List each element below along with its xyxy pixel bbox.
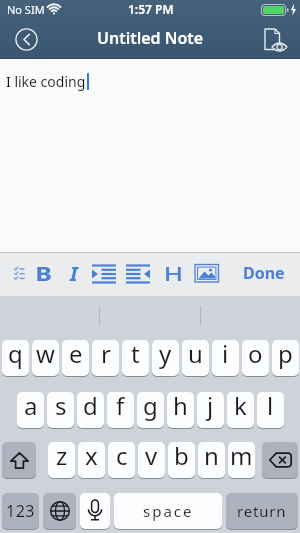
button[interactable]: d — [77, 392, 104, 428]
button[interactable]: h — [167, 392, 194, 428]
button[interactable]: v — [138, 442, 165, 478]
staticText: s — [55, 392, 67, 422]
button[interactable]: t — [122, 340, 149, 376]
staticText: e — [69, 340, 83, 370]
button[interactable] — [2, 442, 36, 478]
button[interactable]: p — [272, 340, 299, 376]
button[interactable] — [80, 493, 110, 529]
staticText: d — [83, 392, 98, 422]
button[interactable] — [262, 442, 298, 478]
staticText: i — [222, 340, 229, 370]
staticText: No SIM — [7, 2, 45, 17]
staticText: 1:57 PM — [128, 1, 174, 17]
staticText: I like coding — [6, 72, 86, 91]
button[interactable]: m — [228, 442, 255, 478]
button[interactable] — [124, 262, 152, 286]
staticText: Untitled Note — [97, 27, 204, 49]
button[interactable]: l — [257, 392, 284, 428]
staticText: v — [145, 442, 158, 472]
button[interactable]: g — [137, 392, 164, 428]
staticText: H — [164, 260, 183, 287]
staticText: y — [159, 340, 172, 370]
button[interactable]: x — [78, 442, 105, 478]
staticText: k — [234, 392, 247, 422]
staticText: o — [248, 340, 263, 370]
button[interactable]: r — [92, 340, 119, 376]
staticText: B — [35, 260, 53, 287]
staticText: n — [204, 442, 219, 472]
button[interactable]: space — [114, 493, 222, 529]
button[interactable] — [194, 263, 220, 284]
staticText: m — [230, 442, 253, 472]
staticText: c — [116, 442, 128, 472]
button[interactable]: c — [108, 442, 135, 478]
button[interactable] — [90, 262, 118, 286]
staticText: u — [188, 340, 203, 370]
staticText: g — [143, 392, 158, 422]
button[interactable]: q — [2, 340, 29, 376]
staticText: return — [237, 501, 287, 521]
staticText: f — [116, 392, 125, 422]
button[interactable]: I — [14, 259, 134, 287]
staticText: Done — [243, 262, 285, 284]
button[interactable]: f — [107, 392, 134, 428]
button[interactable]: e — [62, 340, 89, 376]
staticText: b — [174, 442, 189, 472]
button[interactable]: a — [17, 392, 44, 428]
button[interactable]: n — [198, 442, 225, 478]
button[interactable]: B — [0, 259, 104, 287]
staticText: x — [85, 442, 98, 472]
staticText: 123 — [6, 500, 35, 522]
staticText: q — [8, 340, 23, 370]
staticText: h — [173, 392, 188, 422]
button[interactable]: return — [226, 493, 298, 529]
button[interactable]: Done — [204, 259, 300, 287]
button[interactable]: u — [182, 340, 209, 376]
button[interactable]: o — [242, 340, 269, 376]
button[interactable]: k — [227, 392, 254, 428]
button[interactable] — [11, 264, 29, 284]
staticText: space — [143, 501, 194, 521]
staticText: j — [207, 392, 214, 422]
button[interactable] — [43, 493, 76, 529]
button[interactable]: j — [197, 392, 224, 428]
button[interactable]: w — [32, 340, 59, 376]
staticText: l — [267, 392, 274, 422]
staticText: z — [56, 442, 68, 472]
button[interactable]: i — [212, 340, 239, 376]
staticText: I — [70, 260, 78, 287]
button[interactable]: s — [47, 392, 74, 428]
button[interactable]: 123 — [2, 493, 39, 529]
staticText: w — [36, 340, 55, 370]
staticText: p — [278, 340, 293, 370]
staticText: t — [131, 340, 140, 370]
button[interactable]: b — [168, 442, 195, 478]
button[interactable]: H — [113, 259, 233, 287]
button[interactable] — [13, 26, 40, 53]
button[interactable]: y — [152, 340, 179, 376]
staticText: r — [101, 340, 111, 370]
staticText: a — [24, 392, 38, 422]
button[interactable]: z — [48, 442, 75, 478]
button[interactable] — [261, 26, 291, 53]
